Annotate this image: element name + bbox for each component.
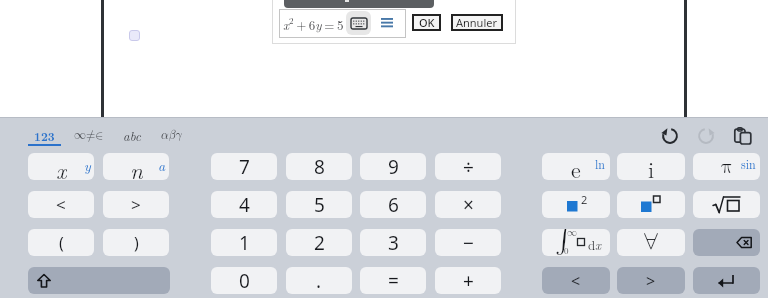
staticText: − <box>463 230 474 256</box>
staticText: 8 <box>314 154 325 180</box>
staticText: d <box>588 235 596 253</box>
button[interactable]: π <box>693 153 760 180</box>
button[interactable]: 8 <box>286 153 352 180</box>
staticText: ÷ <box>463 154 474 180</box>
button[interactable]: Annuler <box>451 14 503 31</box>
staticText: 9 <box>388 154 399 180</box>
button[interactable]: > <box>103 191 169 218</box>
button[interactable]: i <box>617 153 685 180</box>
button[interactable]: = <box>360 267 426 294</box>
staticText: e <box>571 153 581 180</box>
staticText: OK <box>419 15 435 30</box>
button[interactable]: × <box>435 191 501 218</box>
button[interactable]: > <box>617 267 685 294</box>
button[interactable]: − <box>435 229 501 256</box>
button[interactable]: 123 <box>28 122 61 148</box>
button[interactable]: ∀ <box>617 229 685 256</box>
staticText: ∞ <box>567 229 577 238</box>
button[interactable]: 2 <box>542 191 610 218</box>
button[interactable]: 4 <box>211 191 277 218</box>
staticText: a <box>158 155 166 175</box>
staticText: Annuler <box>456 15 498 30</box>
button[interactable] <box>693 229 760 256</box>
button[interactable]: + <box>435 267 501 294</box>
staticText: 7 <box>239 154 250 180</box>
staticText: x2 + 6y = 5 <box>283 14 344 33</box>
button[interactable]: OK <box>412 14 441 31</box>
staticText: 123 <box>34 127 55 144</box>
staticText: sin <box>741 155 756 172</box>
button[interactable]: 1 <box>211 229 277 256</box>
staticText: ∀ <box>643 231 659 255</box>
button[interactable] <box>693 267 760 294</box>
staticText: x <box>56 153 67 180</box>
staticText: ) <box>134 232 139 254</box>
staticText: x <box>595 235 602 253</box>
staticText: > <box>646 270 656 292</box>
button[interactable]: ∞≠∈ <box>72 122 106 148</box>
staticText: 2 <box>581 192 588 207</box>
button[interactable]: ÷ <box>435 153 501 180</box>
staticText: i <box>648 153 655 180</box>
button[interactable]: ) <box>103 229 169 256</box>
staticText: < <box>56 193 66 216</box>
button[interactable]: ( <box>28 229 94 256</box>
staticText: × <box>463 192 474 218</box>
button[interactable] <box>694 123 718 147</box>
staticText: 0 <box>564 244 569 256</box>
button[interactable]: x <box>28 153 94 180</box>
staticText: 0 <box>239 268 250 294</box>
button[interactable]: 5 <box>286 191 352 218</box>
staticText: y <box>84 155 91 175</box>
staticText: + <box>463 268 474 294</box>
button[interactable] <box>730 123 756 147</box>
staticText: 6 <box>388 192 399 218</box>
button[interactable]: < <box>542 267 610 294</box>
button[interactable] <box>28 267 170 294</box>
staticText: abc <box>123 126 141 144</box>
staticText: π <box>721 157 733 177</box>
staticText: 4 <box>239 192 250 218</box>
button[interactable] <box>377 13 397 33</box>
staticText: n <box>130 153 143 180</box>
button[interactable]: 𝛼𝛽𝛾 <box>156 122 186 148</box>
button[interactable]: . <box>286 267 352 294</box>
button[interactable] <box>693 191 760 218</box>
staticText: < <box>571 270 581 292</box>
staticText: 𝛼𝛽𝛾 <box>161 129 182 141</box>
staticText: ln <box>595 155 606 172</box>
staticText: ∞≠∈ <box>74 129 104 141</box>
button[interactable]: < <box>28 191 94 218</box>
button[interactable]: 3 <box>360 229 426 256</box>
button[interactable] <box>617 191 685 218</box>
button[interactable]: 6 <box>360 191 426 218</box>
button[interactable]: 9 <box>360 153 426 180</box>
staticText: ∫ <box>555 229 573 252</box>
button[interactable]: ∫ <box>542 229 610 256</box>
button[interactable]: abc <box>118 122 146 148</box>
button[interactable]: 0 <box>211 267 277 294</box>
button[interactable]: 2 <box>286 229 352 256</box>
button[interactable] <box>657 123 681 147</box>
button[interactable] <box>129 30 140 41</box>
staticText: 2 <box>314 230 325 256</box>
staticText: 1 <box>239 230 250 256</box>
button[interactable]: e <box>542 153 610 180</box>
button[interactable]: n <box>103 153 169 180</box>
staticText: = <box>388 268 399 294</box>
staticText: . <box>316 268 322 294</box>
staticText: > <box>131 193 141 216</box>
button[interactable] <box>346 11 371 35</box>
staticText: 3 <box>388 230 399 256</box>
button[interactable]: 7 <box>211 153 277 180</box>
staticText: 5 <box>314 192 325 218</box>
staticText: ( <box>59 232 64 254</box>
